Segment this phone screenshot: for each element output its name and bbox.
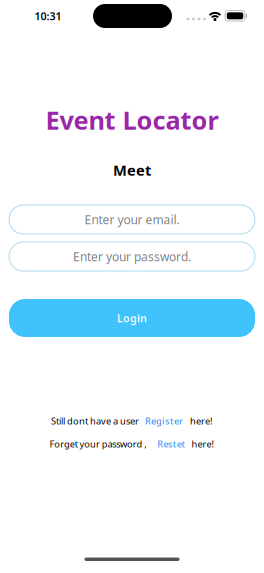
staticText: here!	[191, 438, 214, 450]
staticText: Login	[117, 311, 147, 325]
button[interactable]: Restet	[157, 438, 185, 450]
button[interactable]: Enter your email.	[9, 205, 255, 234]
button[interactable]: Register	[145, 415, 183, 427]
staticText: Register	[145, 415, 183, 427]
staticText: Forget your password ,	[49, 438, 147, 450]
staticText: Enter your password.	[73, 248, 191, 264]
button[interactable]: Enter your password.	[9, 242, 255, 271]
staticText: Enter your email.	[84, 211, 179, 227]
staticText: Meet	[113, 160, 151, 180]
staticText: Event Locator	[45, 103, 218, 137]
button[interactable]: Login	[9, 299, 255, 337]
staticText: 10:31	[34, 9, 61, 23]
staticText: Restet	[157, 438, 185, 450]
staticText: Still dont have a user	[51, 415, 139, 427]
staticText: here!	[190, 415, 213, 427]
